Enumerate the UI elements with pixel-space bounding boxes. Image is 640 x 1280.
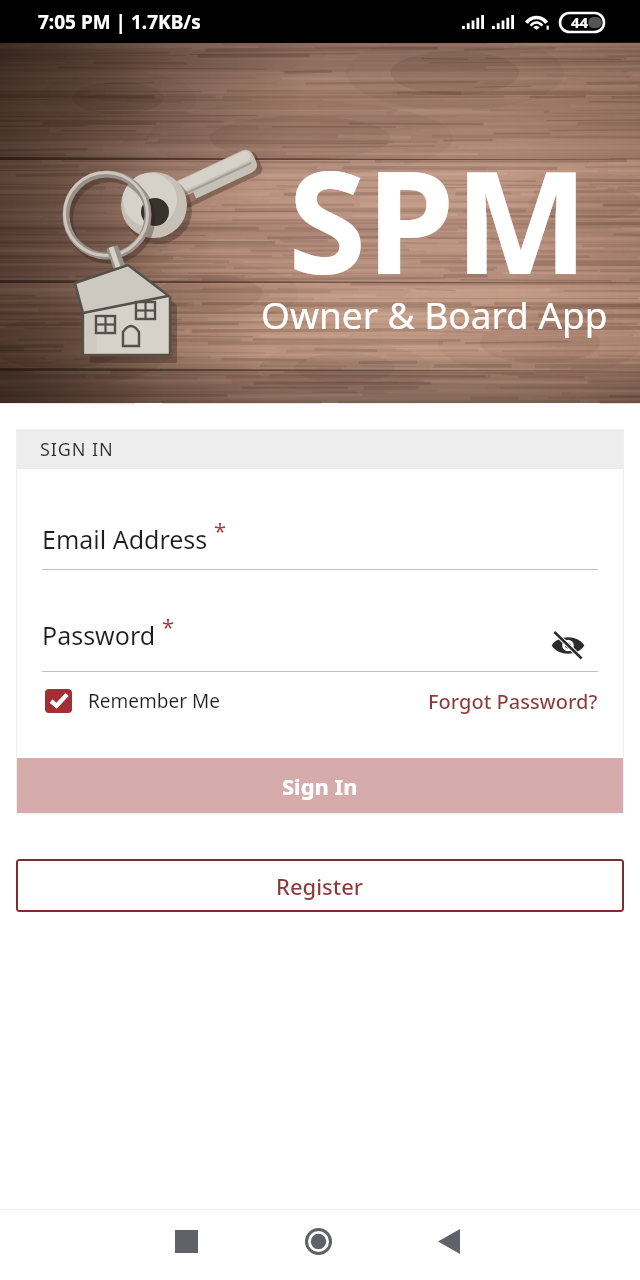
staticText: * — [162, 611, 175, 641]
staticText: SPM — [288, 122, 589, 315]
staticText: SIGN IN — [40, 437, 114, 462]
staticText: Forgot Password? — [428, 688, 598, 715]
button[interactable]: Forgot Password? — [428, 688, 598, 715]
staticText: 44 — [571, 12, 589, 32]
button[interactable]: Remember Me — [45, 688, 220, 714]
button[interactable]: Register — [16, 859, 624, 912]
staticText: Password — [42, 618, 156, 652]
staticText: * — [214, 515, 227, 545]
button[interactable]: Recents — [150, 1206, 222, 1276]
button[interactable]: Back — [413, 1206, 485, 1276]
staticText: Register — [276, 871, 364, 901]
staticText: Sign In — [282, 771, 358, 801]
button[interactable]: Home — [282, 1206, 354, 1276]
button[interactable]: Sign In — [16, 758, 624, 814]
staticText: Remember Me — [88, 688, 220, 714]
staticText: 7:05 PM | 1.7KB/s — [38, 9, 201, 35]
staticText: Owner & Board App — [261, 289, 608, 339]
button[interactable]: Show password — [548, 625, 588, 665]
staticText: Email Address — [42, 522, 208, 556]
